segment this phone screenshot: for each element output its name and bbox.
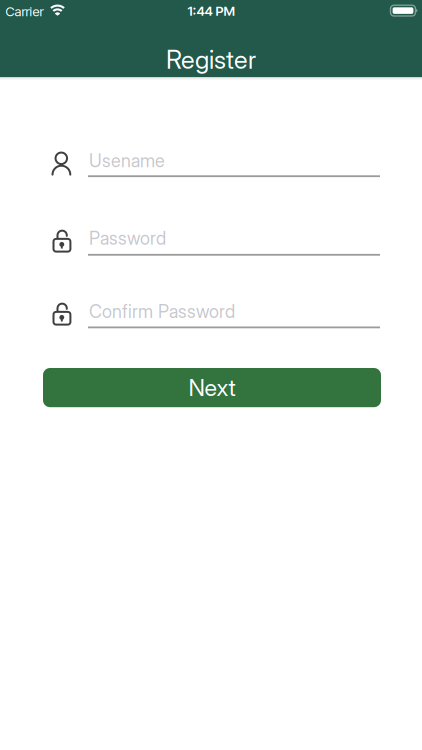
staticText: Password <box>89 227 166 249</box>
staticText: Carrier <box>5 3 43 19</box>
staticText: 1:44 PM <box>187 3 234 19</box>
button[interactable]: Password <box>42 214 380 258</box>
button[interactable]: Confirm Password <box>42 287 380 331</box>
staticText: Next <box>188 374 235 402</box>
button[interactable]: Usename <box>42 136 380 180</box>
staticText: Register <box>166 44 256 75</box>
staticText: Usename <box>89 150 165 171</box>
button[interactable]: Next <box>43 368 381 407</box>
staticText: Confirm Password <box>89 301 235 322</box>
